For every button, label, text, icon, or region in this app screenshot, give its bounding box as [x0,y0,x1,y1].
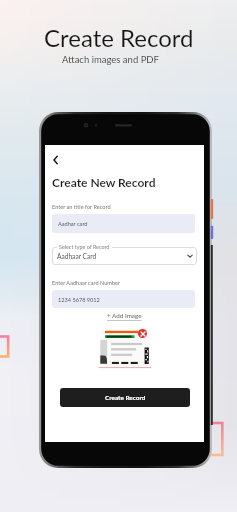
staticText: Create Record [44,23,194,52]
staticText: Aadhar card [58,220,88,227]
staticText: 1234 5678 9012 [58,296,100,303]
staticText: Create New Record [52,175,156,189]
button[interactable]: Create Record [60,388,190,407]
staticText: Select type of Record [59,244,110,250]
button[interactable]: Back [48,152,64,168]
button[interactable]: Aadhar card [52,214,195,233]
staticText: Attach images and PDF [62,54,159,65]
staticText: Create Record [105,394,146,402]
button[interactable]: + Add Image [107,312,142,320]
staticText: + Add Image [107,312,142,320]
staticText: Enter an title for Record [52,203,111,210]
button[interactable]: Remove image [138,329,147,338]
staticText: Aadhaar Card [57,252,97,260]
staticText: Enter Aadhaar card Number [52,279,121,286]
button[interactable]: 1234 5678 9012 [52,290,195,308]
button[interactable] [52,247,197,265]
